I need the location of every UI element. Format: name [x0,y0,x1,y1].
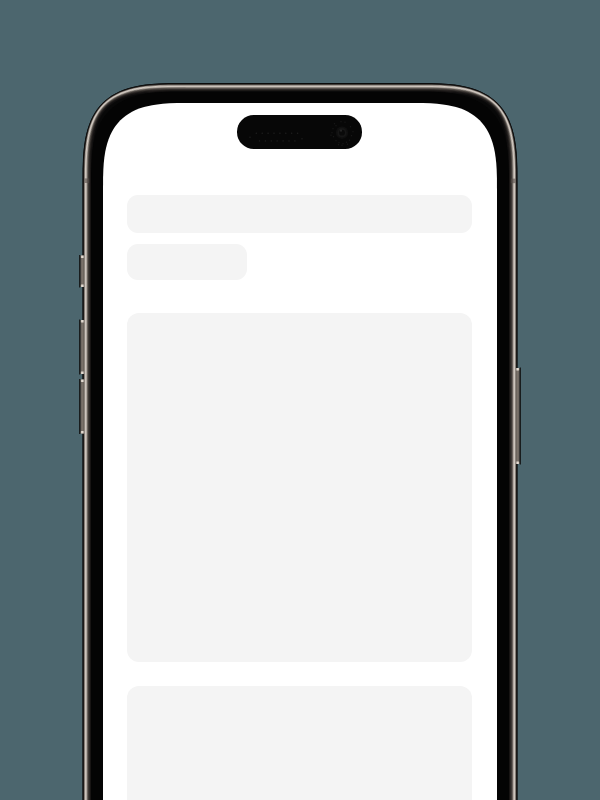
other: Dynamic Island [237,115,362,149]
